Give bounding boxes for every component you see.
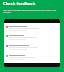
button[interactable] xyxy=(6,26,58,33)
staticText: Check feedback xyxy=(3,1,36,7)
button[interactable] xyxy=(6,55,58,63)
button[interactable] xyxy=(6,35,58,43)
button[interactable] xyxy=(6,45,58,53)
staticText: See what people are saying about the wor… xyxy=(3,8,63,14)
